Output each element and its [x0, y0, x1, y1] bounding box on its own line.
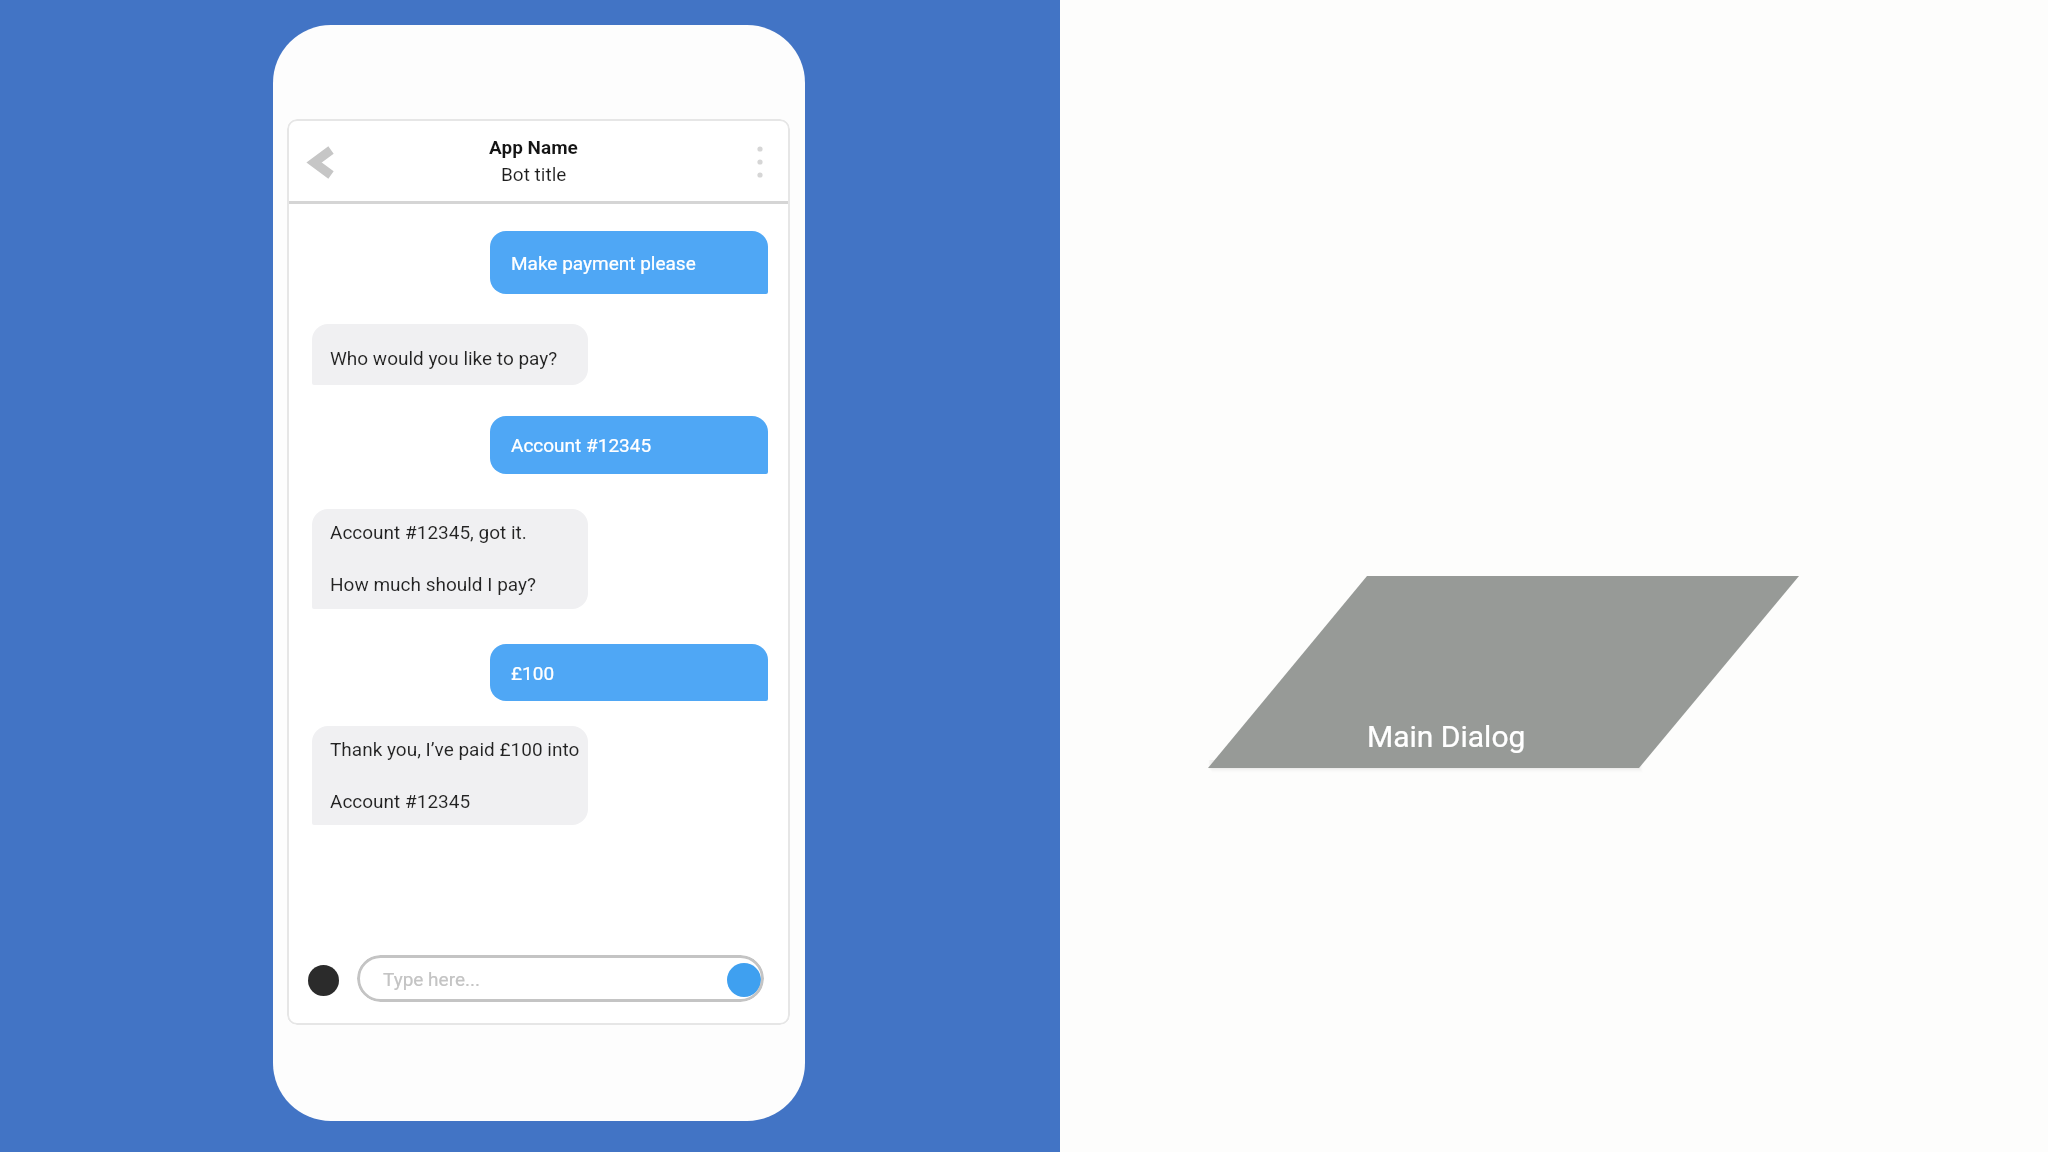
staticText: Account #12345, got it.	[330, 521, 527, 543]
staticText: App Name	[489, 136, 578, 158]
button[interactable]: Profile	[308, 965, 339, 996]
staticText: Type here...	[383, 968, 481, 990]
button[interactable]: Account #12345	[490, 416, 768, 474]
staticText: Make payment please	[511, 252, 696, 274]
button[interactable]: Make payment please	[490, 231, 768, 294]
button[interactable]: Back	[296, 136, 348, 188]
button[interactable]: Account #12345, got it.	[312, 509, 588, 609]
button[interactable]: £100	[490, 644, 768, 701]
staticText: Who would you like to pay?	[330, 347, 558, 369]
button[interactable]: Who would you like to pay?	[312, 324, 588, 385]
button[interactable]: Send	[727, 963, 761, 997]
staticText: Thank you, I’ve paid £100 into	[330, 738, 580, 760]
staticText: Bot title	[501, 163, 567, 185]
button[interactable]: Type here...	[357, 955, 764, 1002]
staticText: Main Dialog	[1367, 719, 1526, 754]
staticText: Account #12345	[330, 790, 471, 812]
button[interactable]: More options	[740, 142, 780, 182]
staticText: £100	[511, 662, 555, 684]
button[interactable]: Thank you, I’ve paid £100 into	[312, 726, 588, 825]
staticText: Account #12345	[511, 434, 652, 456]
staticText: How much should I pay?	[330, 573, 536, 595]
